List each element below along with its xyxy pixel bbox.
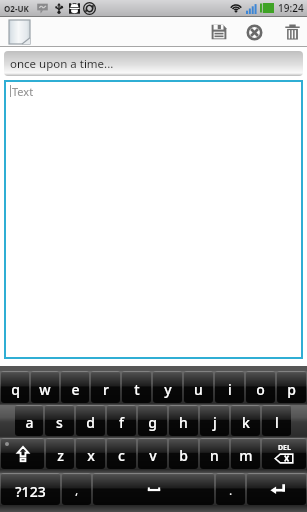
staticText: ,: [75, 484, 78, 498]
staticText: j: [213, 413, 217, 432]
staticText: p: [287, 380, 296, 399]
staticText: g: [148, 413, 157, 432]
button[interactable]: y: [153, 371, 182, 403]
staticText: l: [275, 413, 279, 432]
button[interactable]: r: [91, 371, 120, 403]
button[interactable]: j: [200, 405, 229, 436]
staticText: ?123: [15, 482, 46, 501]
button[interactable]: i: [215, 371, 244, 403]
staticText: c: [118, 446, 125, 465]
button[interactable]: z: [46, 438, 74, 469]
button[interactable]: [1, 438, 44, 469]
button[interactable]: Text: [4, 80, 303, 359]
button[interactable]: s: [45, 405, 74, 436]
button[interactable]: g: [138, 405, 167, 436]
staticText: b: [179, 446, 188, 465]
button[interactable]: once upon a time...: [4, 51, 303, 76]
staticText: r: [103, 380, 109, 399]
staticText: s: [56, 413, 63, 432]
staticText: Text: [12, 84, 34, 99]
button[interactable]: a: [15, 405, 43, 436]
staticText: i: [228, 380, 232, 399]
button[interactable]: x: [76, 438, 105, 469]
button[interactable]: ?123: [1, 473, 60, 505]
staticText: h: [179, 413, 188, 432]
button[interactable]: b: [169, 438, 198, 469]
staticText: y: [164, 380, 172, 399]
staticText: once upon a time...: [10, 56, 114, 72]
staticText: v: [149, 446, 157, 465]
staticText: e: [71, 380, 80, 399]
staticText: m: [239, 446, 253, 465]
staticText: a: [25, 413, 34, 432]
button[interactable]: p: [277, 371, 306, 403]
button[interactable]: Cancel: [242, 19, 267, 45]
staticText: DEL: [278, 443, 291, 453]
button[interactable]: t: [122, 371, 151, 403]
staticText: O2-UK: [4, 3, 29, 14]
button[interactable]: f: [107, 405, 136, 436]
button[interactable]: e: [61, 371, 89, 403]
staticText: 19:24: [278, 1, 304, 15]
button[interactable]: m: [231, 438, 260, 469]
button[interactable]: h: [169, 405, 198, 436]
staticText: z: [57, 446, 64, 465]
button[interactable]: .: [216, 473, 245, 505]
button[interactable]: Save: [207, 19, 231, 45]
staticText: x: [87, 446, 95, 465]
button[interactable]: ,: [62, 473, 91, 505]
staticText: o: [256, 380, 265, 399]
staticText: n: [210, 446, 219, 465]
button[interactable]: DEL: [262, 438, 306, 469]
button[interactable]: Note: [9, 20, 30, 44]
staticText: k: [242, 413, 250, 432]
staticText: .: [229, 484, 232, 498]
button[interactable]: k: [231, 405, 260, 436]
staticText: q: [11, 380, 20, 399]
button[interactable]: w: [31, 371, 59, 403]
staticText: f: [119, 413, 124, 432]
staticText: w: [39, 380, 51, 399]
button[interactable]: [93, 473, 214, 505]
staticText: d: [86, 413, 95, 432]
button[interactable]: l: [262, 405, 291, 436]
button[interactable]: [247, 473, 306, 505]
button[interactable]: v: [138, 438, 167, 469]
button[interactable]: o: [246, 371, 275, 403]
button[interactable]: n: [200, 438, 229, 469]
button[interactable]: d: [76, 405, 105, 436]
button[interactable]: q: [1, 371, 29, 403]
button[interactable]: Delete: [281, 19, 304, 45]
button[interactable]: c: [107, 438, 136, 469]
staticText: u: [194, 380, 203, 399]
staticText: t: [134, 380, 140, 399]
button[interactable]: u: [184, 371, 213, 403]
